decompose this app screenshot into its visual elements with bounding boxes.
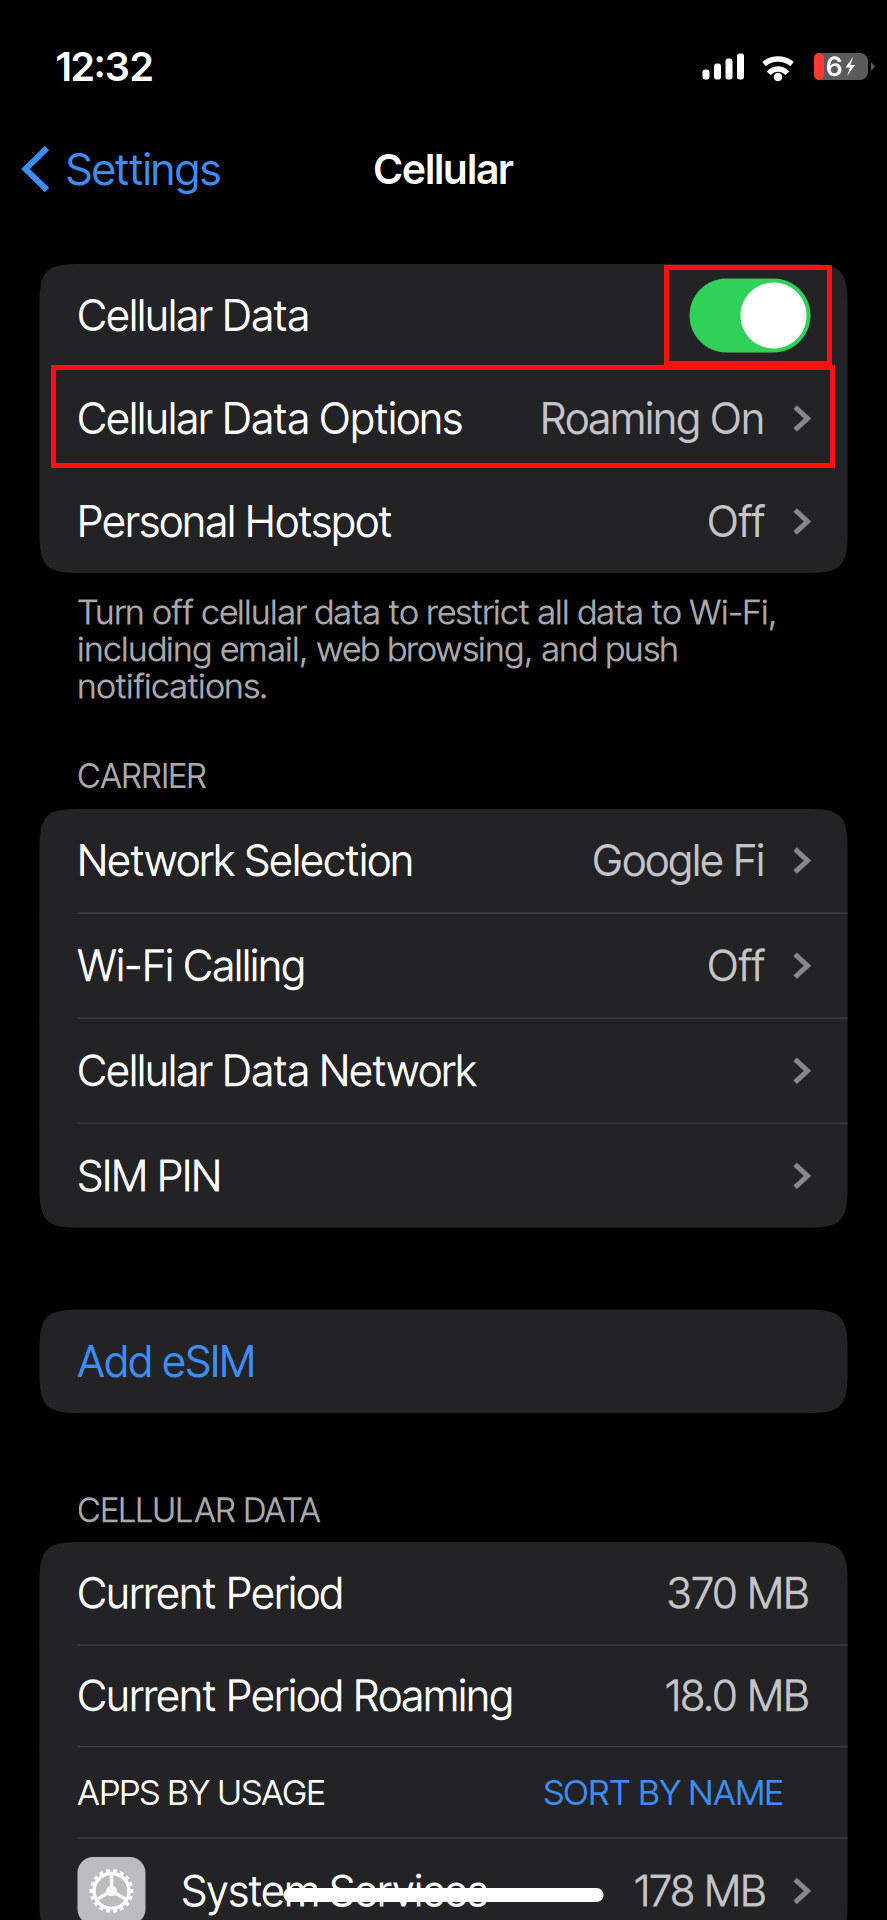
button[interactable]: Cellular Data Network (39, 1019, 847, 1122)
button[interactable]: System Services (39, 1839, 847, 1920)
button[interactable]: SIM PIN (39, 1124, 847, 1228)
staticText: 370 MB (666, 1567, 809, 1619)
button[interactable]: Wi-Fi Calling (39, 914, 847, 1017)
button[interactable]: Settings (0, 130, 221, 208)
staticText: CELLULAR DATA (77, 1490, 320, 1530)
staticText: Personal Hotspot (77, 496, 392, 547)
staticText: Google Fi (592, 835, 764, 886)
staticText: APPS BY USAGE (77, 1771, 325, 1813)
staticText: Roaming On (540, 393, 764, 444)
staticText: Cellular Data Network (77, 1045, 476, 1097)
staticText: Cellular Data (77, 290, 309, 341)
staticText: SORT BY NAME (543, 1771, 783, 1813)
staticText: SIM PIN (77, 1150, 221, 1202)
staticText: 12:32 (56, 42, 153, 91)
staticText: 18.0 MB (665, 1670, 809, 1721)
staticText: Current Period (77, 1567, 343, 1619)
button[interactable]: SORT BY NAME (543, 1771, 783, 1813)
staticText: Settings (66, 142, 221, 196)
staticText: Network Selection (77, 835, 413, 886)
staticText: Cellular Data Options (77, 393, 462, 444)
button[interactable]: Network Selection (39, 809, 847, 912)
staticText: Cellular (373, 144, 513, 194)
staticText: System Services (181, 1865, 487, 1917)
button[interactable]: Cellular Data (689, 278, 810, 352)
staticText: Add eSIM (77, 1336, 255, 1387)
button[interactable]: Add eSIM (39, 1310, 847, 1413)
staticText: Off (707, 496, 764, 547)
staticText: Off (707, 940, 764, 991)
staticText: 6 (826, 50, 842, 83)
staticText: Current Period Roaming (77, 1670, 513, 1721)
staticText: Wi-Fi Calling (77, 940, 305, 991)
staticText: 178 MB (634, 1865, 766, 1917)
button[interactable]: Cellular Data Options (39, 367, 847, 470)
staticText: CARRIER (77, 756, 206, 796)
staticText: Turn off cellular data to restrict all d… (77, 591, 777, 707)
button[interactable]: Personal Hotspot (39, 470, 847, 573)
